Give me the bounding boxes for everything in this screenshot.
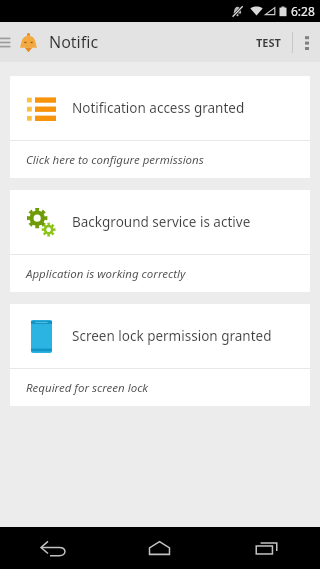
button[interactable]: Notification access granted [10,76,310,178]
staticText: Required for screen lock [26,380,149,396]
button[interactable]: TEST [245,22,292,62]
button[interactable]: More options [293,22,320,62]
staticText: Notification access granted [72,99,245,117]
staticText: Screen lock permission granted [72,327,272,345]
button[interactable]: Home [106,527,213,569]
staticText: Application is working correctly [26,266,186,282]
staticText: 6:28 [291,3,315,19]
staticText: TEST [256,35,281,50]
staticText: Background service is active [72,213,251,231]
button[interactable]: Recent apps [213,527,320,569]
button[interactable]: Background service is active [10,190,310,292]
staticText: Notific [49,31,99,53]
staticText: Click here to configure permissions [26,152,204,168]
button[interactable]: Back [0,527,106,569]
button[interactable]: Open navigation drawer [0,22,13,62]
button[interactable]: Screen lock permission granted [10,304,310,406]
